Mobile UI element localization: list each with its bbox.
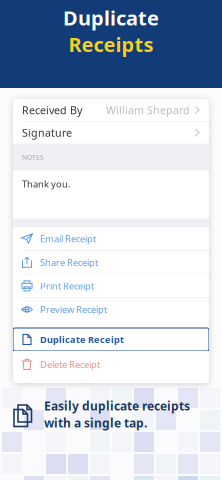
staticText: with a single tap. <box>44 415 147 431</box>
staticText: Receipts <box>68 31 153 58</box>
staticText: Share Receipt <box>40 256 98 268</box>
button[interactable]: Received By <box>13 99 209 121</box>
button[interactable]: Email Receipt <box>13 227 209 250</box>
button[interactable]: Preview Receipt <box>13 298 209 321</box>
button[interactable]: Print Receipt <box>13 274 209 297</box>
button[interactable]: Duplicate Receipt <box>13 328 209 351</box>
staticText: Thank you. <box>22 178 71 190</box>
button[interactable]: Share Receipt <box>13 251 209 274</box>
staticText: NOTES <box>22 153 44 162</box>
staticText: Received By <box>22 103 82 117</box>
staticText: Signature <box>22 125 72 140</box>
staticText: Duplicate Receipt <box>40 333 124 346</box>
staticText: Print Receipt <box>40 280 94 292</box>
staticText: William Shepard <box>106 103 190 117</box>
staticText: Duplicate <box>63 4 159 31</box>
button[interactable]: Delete Receipt <box>13 353 209 376</box>
button[interactable]: Signature <box>13 122 209 144</box>
staticText: Preview Receipt <box>40 303 107 316</box>
staticText: Easily duplicate receipts <box>44 398 190 414</box>
staticText: Delete Receipt <box>40 358 100 371</box>
staticText: Email Receipt <box>40 232 96 245</box>
